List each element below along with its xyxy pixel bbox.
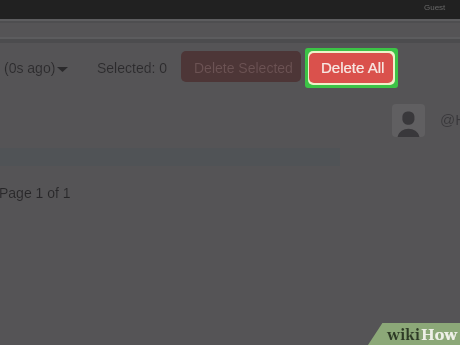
button[interactable]: Delete All <box>309 53 393 83</box>
staticText: Guest <box>424 3 446 12</box>
button[interactable]: (0s ago) <box>4 60 68 76</box>
button[interactable]: Delete Selected <box>181 51 301 82</box>
staticText: How <box>421 326 458 345</box>
staticText: Delete Selected <box>194 60 293 76</box>
staticText: (0s ago) <box>4 60 56 76</box>
staticText: @H <box>440 111 460 128</box>
button[interactable]: Guest <box>424 3 446 12</box>
staticText: Selected: 0 <box>97 60 168 76</box>
staticText: Delete All <box>321 59 385 76</box>
button[interactable]: Profile photo <box>392 104 425 137</box>
staticText: Page 1 of 1 <box>0 185 71 201</box>
staticText: wiki <box>387 326 421 345</box>
